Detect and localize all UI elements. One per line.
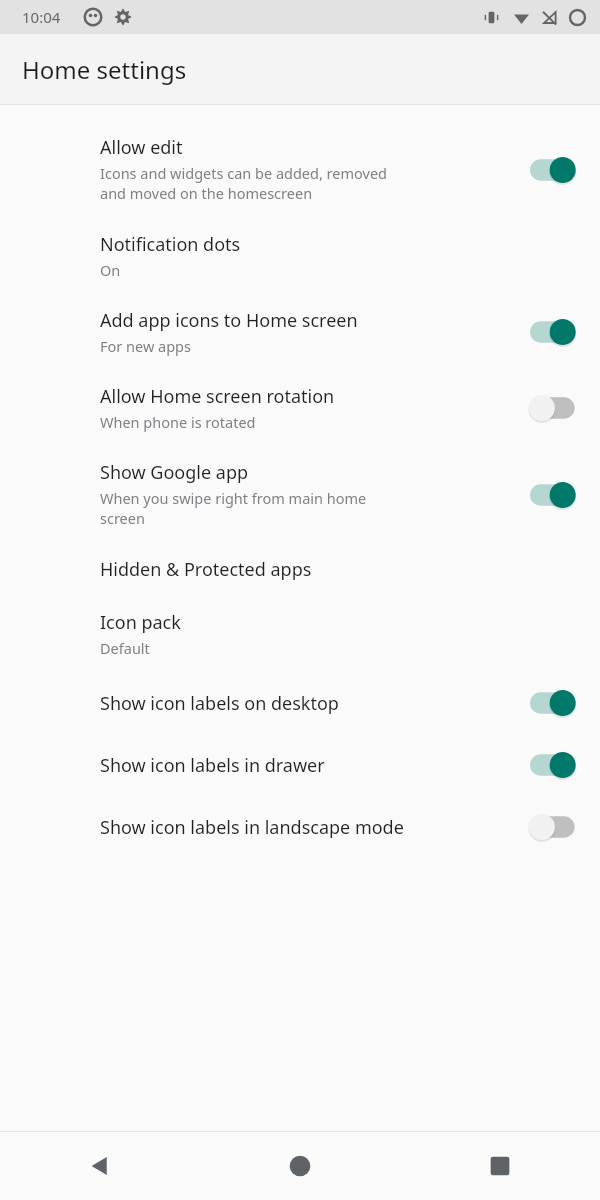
button[interactable]: Notification dots <box>0 218 600 294</box>
staticText: Hidden & Protected apps <box>100 557 312 582</box>
button[interactable]: Toggle, off <box>526 810 582 844</box>
button[interactable]: Toggle, on <box>526 153 582 187</box>
button[interactable]: Show icon labels on desktop <box>0 672 600 734</box>
staticText: Allow edit <box>100 135 183 160</box>
button[interactable]: Toggle, off <box>526 391 582 425</box>
button[interactable]: Toggle, on <box>526 686 582 720</box>
staticText: Icon pack <box>100 610 181 635</box>
button[interactable]: Icon pack <box>0 596 600 672</box>
staticText: Notification dots <box>100 232 241 257</box>
button[interactable]: Toggle, on <box>526 478 582 512</box>
staticText: 10:04 <box>22 7 61 27</box>
button[interactable]: Hidden & Protected apps <box>0 543 600 596</box>
staticText: Default <box>100 638 150 658</box>
staticText: Show icon labels in drawer <box>100 753 325 778</box>
staticText: When phone is rotated <box>100 412 256 432</box>
button[interactable]: Show Google app <box>0 446 600 543</box>
button[interactable]: Recent apps <box>400 1132 600 1200</box>
button[interactable]: Show icon labels in landscape mode <box>0 796 600 858</box>
staticText: On <box>100 260 121 280</box>
staticText: Icons and widgets can be added, removed … <box>100 163 387 204</box>
staticText: Show icon labels in landscape mode <box>100 815 404 840</box>
button[interactable]: Allow Home screen rotation <box>0 370 600 446</box>
button[interactable]: Toggle, on <box>526 315 582 349</box>
button[interactable]: Add app icons to Home screen <box>0 294 600 370</box>
staticText: Allow Home screen rotation <box>100 384 335 409</box>
staticText: Add app icons to Home screen <box>100 308 358 333</box>
button[interactable]: Show icon labels in drawer <box>0 734 600 796</box>
staticText: Home settings <box>22 53 187 86</box>
button[interactable]: Allow edit <box>0 121 600 218</box>
staticText: For new apps <box>100 336 191 356</box>
button[interactable]: Toggle, on <box>526 748 582 782</box>
staticText: Show Google app <box>100 460 249 485</box>
button[interactable]: Back <box>0 1132 200 1200</box>
button[interactable]: Home <box>200 1132 400 1200</box>
staticText: Show icon labels on desktop <box>100 691 339 716</box>
staticText: When you swipe right from main home scre… <box>100 488 367 529</box>
